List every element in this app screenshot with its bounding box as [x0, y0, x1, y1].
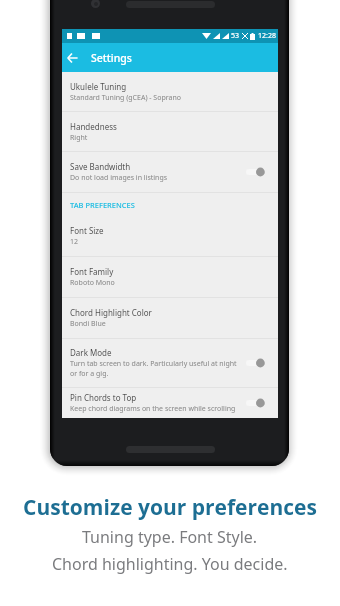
staticText: Chord Highlight Color	[70, 307, 152, 318]
staticText: Do not load images in listings	[70, 173, 168, 183]
button[interactable]: Font Size	[62, 216, 278, 257]
staticText: TAB PREFERENCES	[70, 200, 135, 210]
staticText: Bondi Blue	[70, 319, 106, 329]
button[interactable]: Chord Highlight Color	[62, 298, 278, 339]
staticText: Font Size	[70, 225, 104, 236]
staticText: Roboto Mono	[70, 278, 115, 288]
staticText: Standard Tuning (gCEA) - Soprano	[70, 93, 181, 103]
staticText: 53	[231, 31, 240, 41]
button[interactable]: Dark Mode	[62, 339, 278, 388]
staticText: Save Bandwidth	[70, 161, 131, 172]
button[interactable]: Pin Chords to Top	[62, 388, 278, 418]
staticText: Pin Chords to Top	[70, 392, 137, 403]
staticText: 12:28	[258, 31, 276, 41]
button[interactable]: Toggle Save Bandwidth	[245, 165, 265, 179]
button[interactable]: Handedness	[62, 112, 278, 152]
staticText: Keep chord diagrams on the screen while …	[70, 404, 236, 414]
button[interactable]: Ukulele Tuning	[62, 72, 278, 112]
staticText: Handedness	[70, 121, 117, 132]
staticText: Customize your preferences	[23, 493, 317, 522]
staticText: 12	[70, 237, 79, 247]
staticText: Settings	[91, 51, 132, 65]
staticText: Chord highlighting. You decide.	[52, 553, 288, 575]
staticText: Right	[70, 133, 88, 143]
staticText: Font Family	[70, 266, 114, 277]
button[interactable]: Toggle Dark Mode	[245, 356, 265, 370]
staticText: Tuning type. Font Style.	[82, 526, 258, 548]
staticText: Ukulele Tuning	[70, 81, 127, 92]
button[interactable]: Toggle Pin Chords to Top	[245, 396, 265, 410]
staticText: Turn tab screen to dark. Particularly us…	[70, 359, 237, 379]
staticText: Dark Mode	[70, 347, 112, 358]
button[interactable]: Save Bandwidth	[62, 152, 278, 193]
button[interactable]: Back	[62, 43, 82, 72]
button[interactable]: Font Family	[62, 257, 278, 298]
